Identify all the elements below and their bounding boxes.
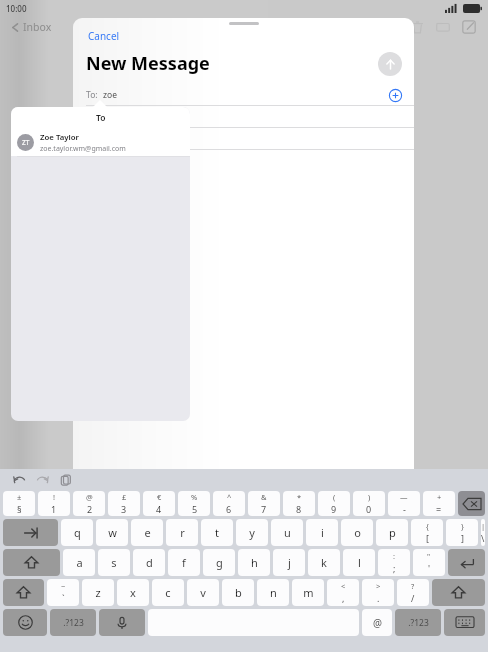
staticText: z [95,585,101,600]
button[interactable]: Next message [88,17,108,37]
button[interactable]: £ [108,491,140,516]
button[interactable]: @ [73,491,105,516]
staticText: Cc/Bcc, From: [86,111,140,123]
button[interactable]: u [271,519,303,546]
staticText: 2 [87,503,93,515]
button[interactable]: l [343,549,375,576]
button[interactable]: Redo [33,471,51,489]
button[interactable]: m [292,579,324,606]
button[interactable]: Send [378,52,402,76]
button[interactable]: k [308,549,340,576]
button[interactable]: | [481,519,485,546]
staticText: = [436,503,442,515]
staticText: , [342,592,345,604]
button[interactable]: Subject: [73,128,414,149]
button[interactable]: t [201,519,233,546]
button[interactable]: > [362,579,394,606]
button[interactable]: v [187,579,219,606]
button[interactable]: To: [73,84,414,105]
button[interactable]: b [222,579,254,606]
staticText: > [376,581,381,591]
button[interactable]: Dictate [99,609,145,636]
button[interactable]: i [306,519,338,546]
button[interactable]: Previous message [68,17,88,37]
button[interactable]: + [423,491,455,516]
staticText: [ [426,532,429,544]
staticText: ^ [227,492,232,502]
button[interactable]: Shift [3,579,44,606]
staticText: p [389,525,396,540]
button[interactable]: Caps lock [3,549,60,576]
button[interactable]: Emoji [3,609,47,636]
button[interactable]: ? [397,579,429,606]
button[interactable]: Undo [10,471,28,489]
button[interactable]: Compose [456,14,482,40]
staticText: Zoe Taylor [40,132,79,143]
button[interactable]: Cancel [86,27,122,45]
button[interactable]: e [131,519,163,546]
staticText: | [481,521,485,531]
button[interactable]: Inbox [8,20,54,34]
button[interactable]: ) [353,491,385,516]
button[interactable]: Add contact [388,88,402,102]
staticText: zoe [103,89,117,101]
button[interactable]: < [327,579,359,606]
button[interactable]: .?123 [50,609,96,636]
button[interactable]: g [203,549,235,576]
button[interactable]: ( [318,491,350,516]
button[interactable]: € [143,491,175,516]
button[interactable]: Delete [404,14,430,40]
button[interactable]: y [236,519,268,546]
button[interactable]: h [238,549,270,576]
button[interactable]: z [82,579,114,606]
button[interactable]: p [376,519,408,546]
button[interactable]: j [273,549,305,576]
button[interactable]: : [378,549,410,576]
button[interactable]: Tab [3,519,58,546]
button[interactable]: { [411,519,443,546]
button[interactable]: Return [448,549,485,576]
button[interactable]: ! [38,491,70,516]
staticText: ± [17,492,22,502]
button[interactable]: .?123 [395,609,441,636]
button[interactable]: @ [362,609,392,636]
button[interactable]: Paste [56,471,74,489]
staticText: b [235,585,242,600]
button[interactable]: Hide keyboard [444,609,485,636]
button[interactable]: a [63,549,95,576]
button[interactable]: ^ [213,491,245,516]
staticText: r [180,525,185,540]
button[interactable]: x [117,579,149,606]
button[interactable]: ± [3,491,35,516]
button[interactable]: Shift [432,579,485,606]
button[interactable]: — [388,491,420,516]
staticText: - [403,503,406,515]
button[interactable]: s [98,549,130,576]
button[interactable]: Cc/Bcc, From: [73,106,414,127]
button[interactable]: } [446,519,478,546]
button[interactable]: * [283,491,315,516]
button[interactable]: % [178,491,210,516]
button[interactable]: r [166,519,198,546]
button[interactable]: ~ [47,579,79,606]
button[interactable]: w [96,519,128,546]
staticText: 4 [156,503,162,515]
staticText: 3 [121,503,127,515]
button[interactable]: q [61,519,93,546]
button[interactable]: o [341,519,373,546]
staticText: . [377,592,380,604]
button[interactable]: d [133,549,165,576]
staticText: w [108,525,117,540]
button[interactable]: ZT [11,129,190,156]
button[interactable]: Backspace [458,491,485,516]
button[interactable]: " [413,549,445,576]
staticText: 1 [51,503,57,515]
button[interactable]: c [152,579,184,606]
staticText: \ [481,532,485,544]
button[interactable]: f [168,549,200,576]
button[interactable]: n [257,579,289,606]
button[interactable]: & [248,491,280,516]
